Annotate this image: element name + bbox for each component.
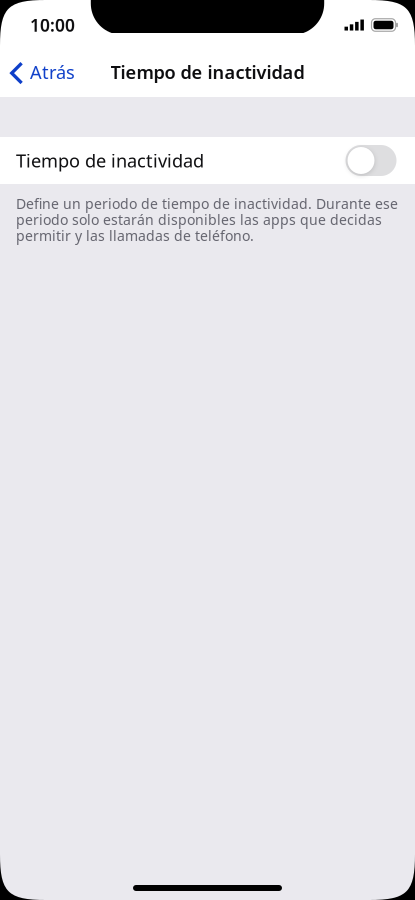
staticText: 10:00 (30, 13, 75, 37)
staticText: Define un periodo de tiempo de inactivid… (16, 194, 398, 245)
button[interactable]: Atrás (0, 44, 83, 97)
staticText: Tiempo de inactividad (16, 148, 204, 173)
staticText: Tiempo de inactividad (110, 60, 304, 84)
staticText: Atrás (30, 60, 75, 84)
button[interactable]: Tiempo de inactividad (0, 137, 415, 184)
